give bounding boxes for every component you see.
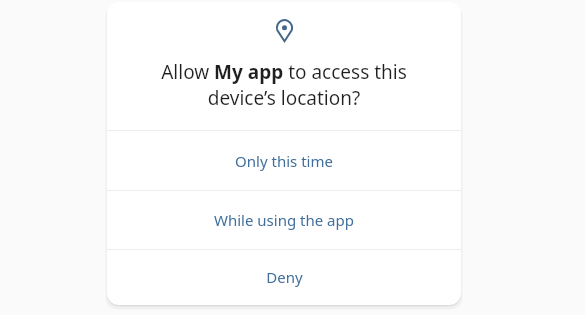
button[interactable]: Deny — [107, 250, 461, 304]
button[interactable]: Only this time — [107, 131, 461, 190]
staticText: Allow My app to access this device’s loc… — [137, 59, 431, 111]
staticText: While using the app — [214, 210, 354, 230]
staticText: Deny — [266, 267, 303, 287]
button[interactable]: While using the app — [107, 191, 461, 249]
staticText: Only this time — [235, 151, 333, 171]
other: Location — [275, 19, 294, 42]
